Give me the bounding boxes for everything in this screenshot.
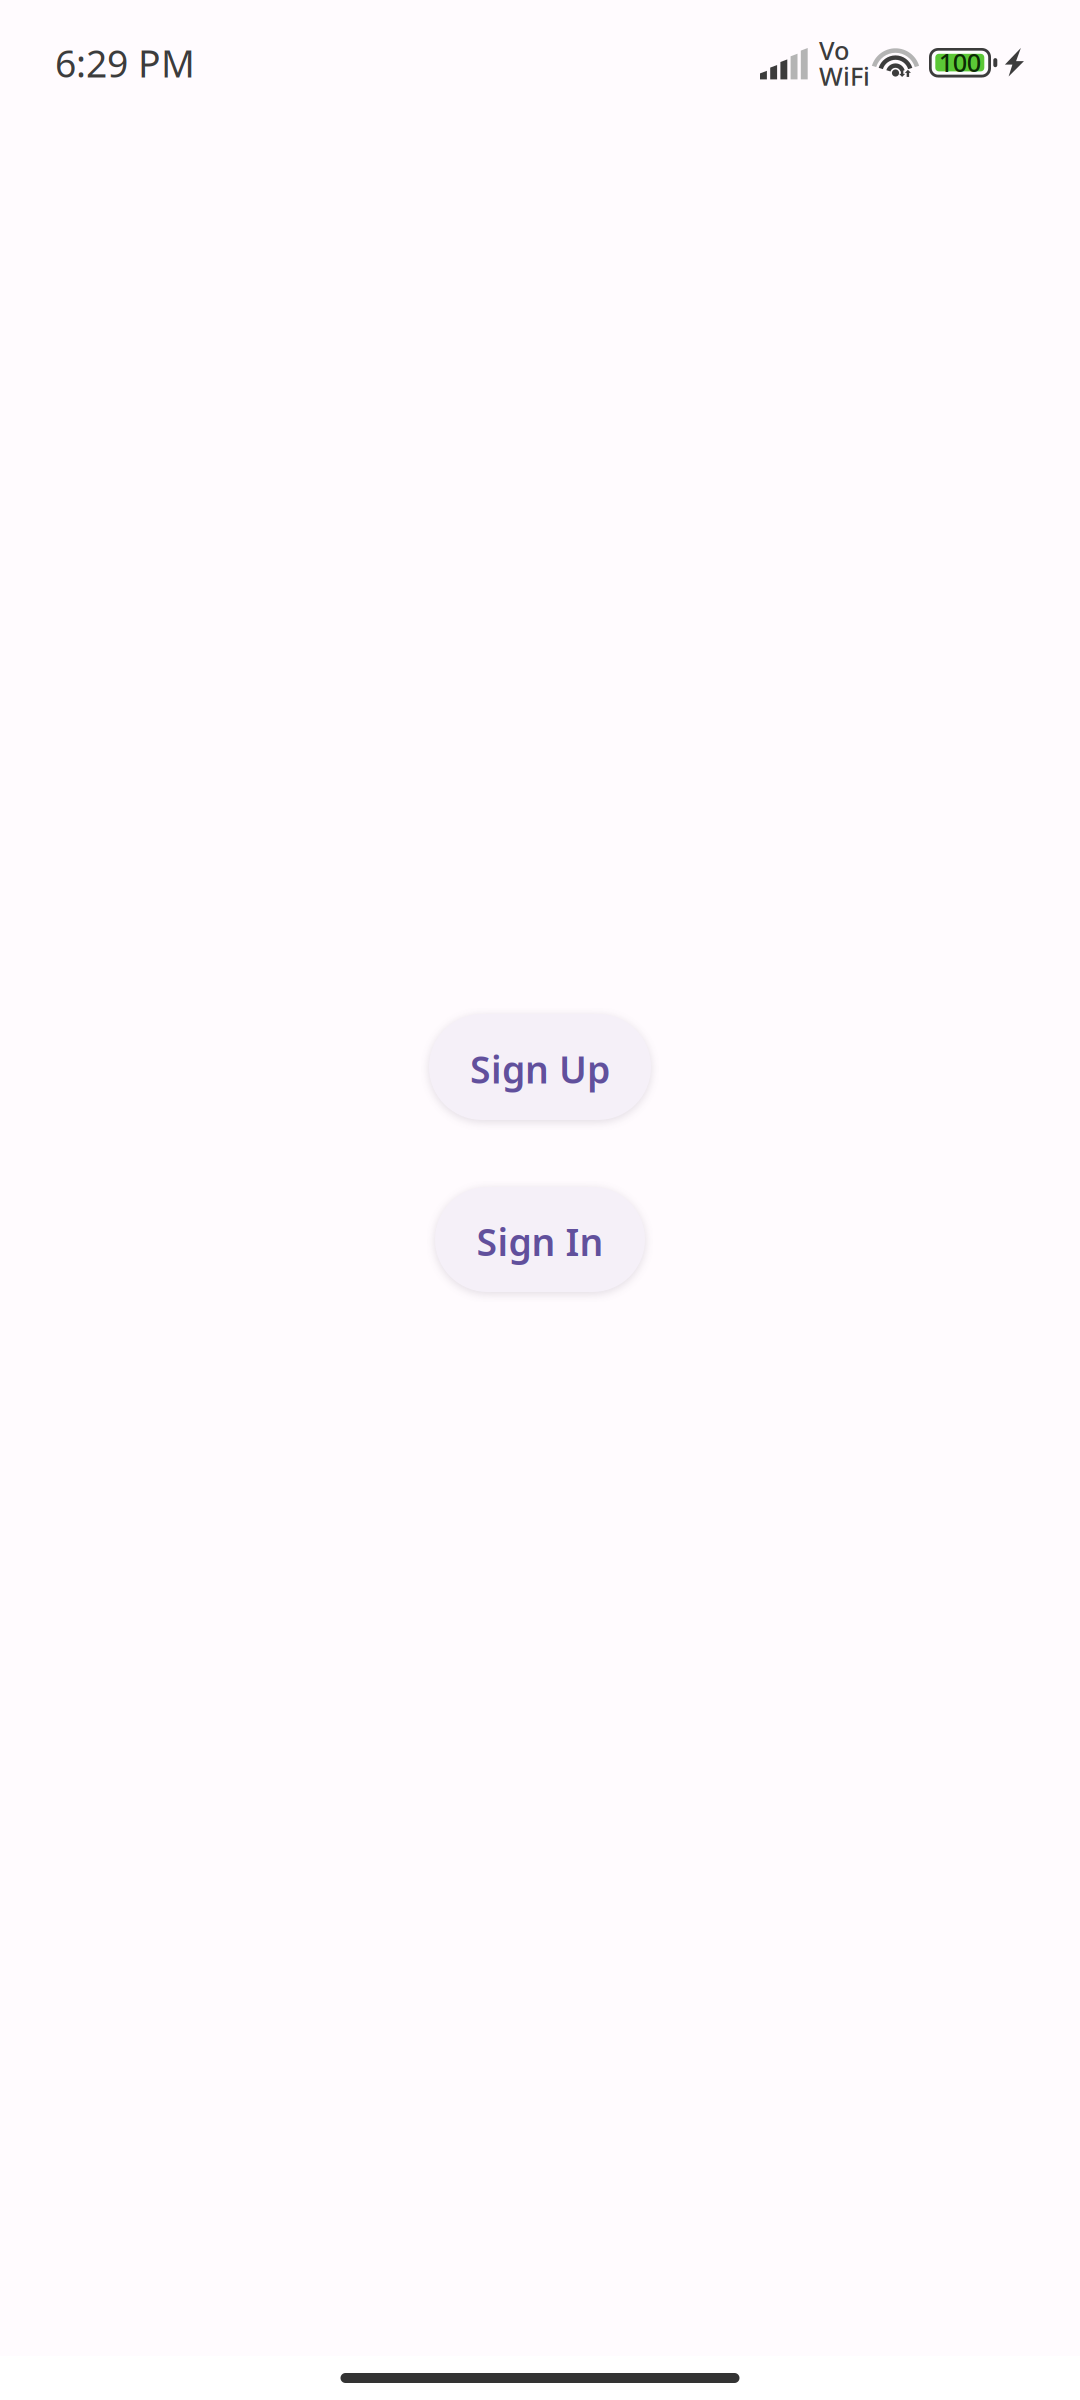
staticText: 6:29 PM: [55, 38, 195, 88]
button[interactable]: Sign In: [435, 1187, 645, 1292]
staticText: Sign In: [476, 1217, 603, 1266]
staticText: Vo: [819, 33, 849, 67]
staticText: 100: [939, 45, 981, 79]
button[interactable]: Sign Up: [429, 1014, 651, 1120]
staticText: WiFi: [819, 59, 870, 93]
staticText: Sign Up: [470, 1044, 610, 1094]
